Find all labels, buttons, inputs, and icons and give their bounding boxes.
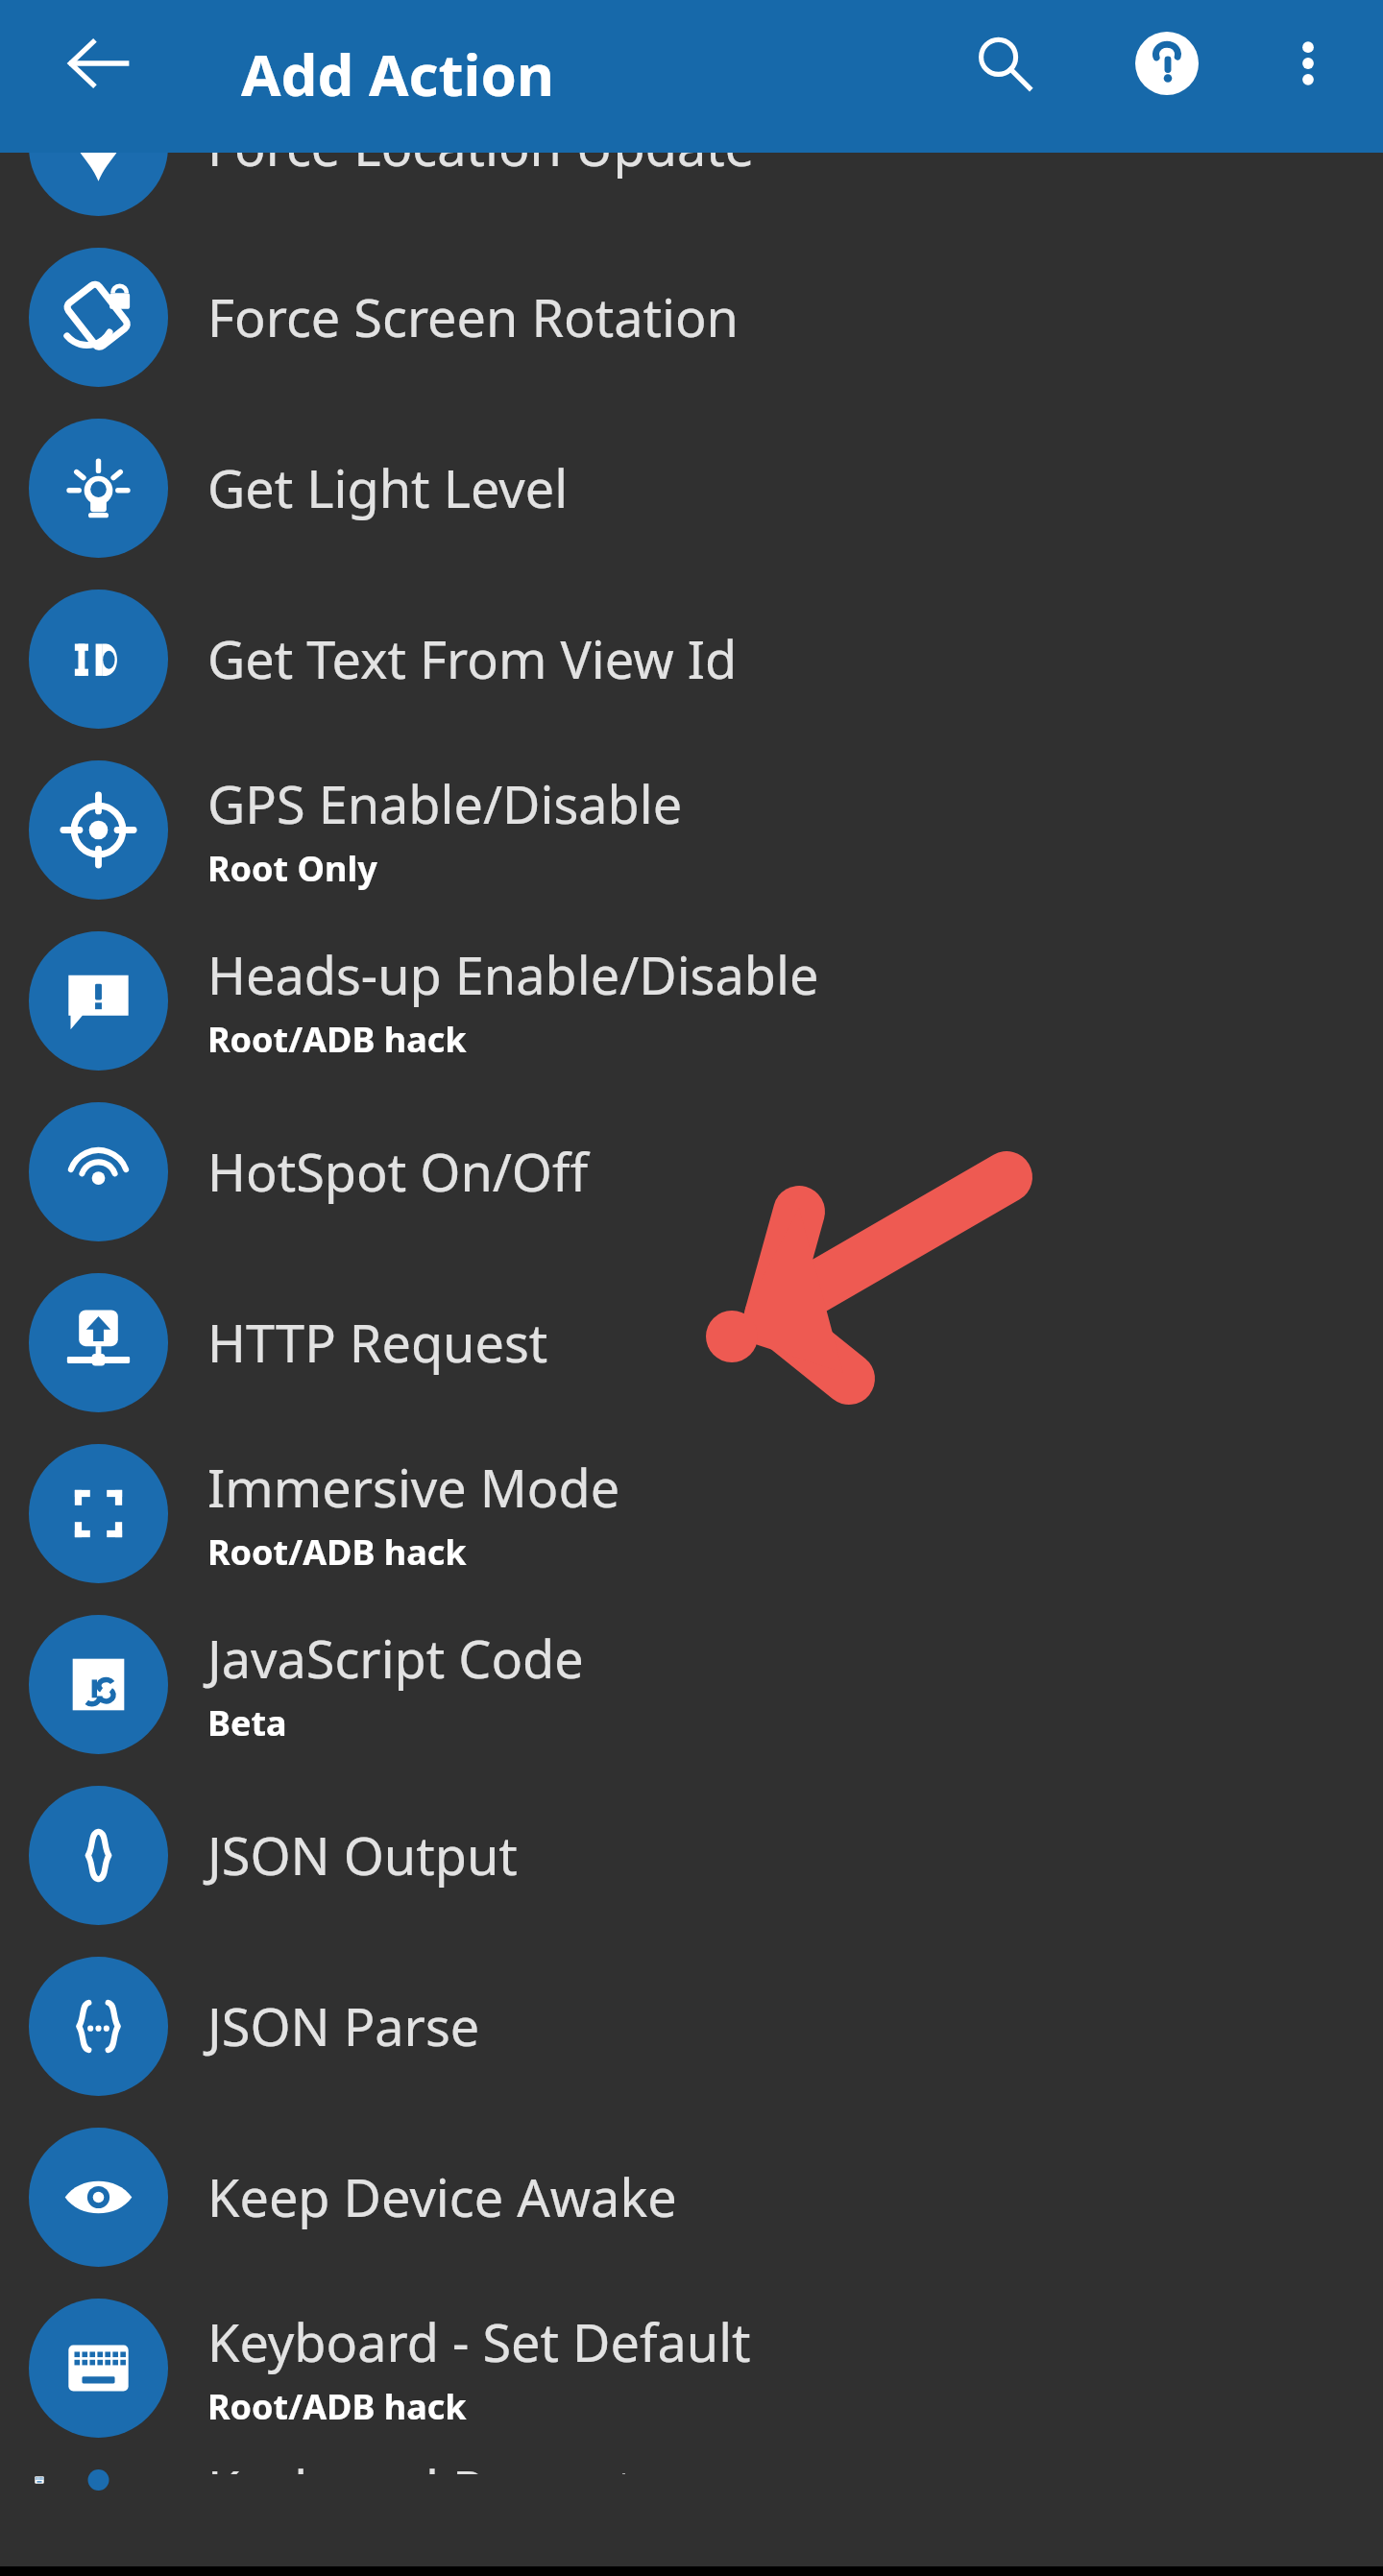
staticText: GPS Enable/Disable (207, 768, 683, 839)
staticText: JSON Parse (207, 1990, 480, 2061)
button[interactable]: Get Text From View Id (0, 573, 1383, 744)
button[interactable]: Help (1123, 19, 1211, 108)
staticText: Beta (207, 1699, 287, 1746)
button[interactable]: HTTP Request (0, 1257, 1383, 1428)
button[interactable]: Heads-up Enable/Disable (0, 915, 1383, 1086)
button[interactable]: Get Light Level (0, 402, 1383, 573)
button[interactable]: Force Screen Rotation (0, 231, 1383, 402)
staticText: JSON Output (207, 1819, 518, 1890)
button[interactable]: Force Location Update (0, 153, 1383, 231)
staticText: Keep Device Awake (207, 2161, 677, 2232)
staticText: Root/ADB hack (207, 1529, 467, 1576)
staticText: Heads-up Enable/Disable (207, 939, 819, 1010)
staticText: JavaScript Code (207, 1623, 584, 1694)
staticText: Root/ADB hack (207, 2383, 467, 2430)
button[interactable]: Keep Device Awake (0, 2111, 1383, 2282)
button[interactable]: More options (1264, 19, 1352, 108)
staticText: HTTP Request (207, 1307, 548, 1378)
staticText: Keyboard Prompt (207, 2453, 635, 2474)
staticText: Immersive Mode (207, 1452, 620, 1523)
button[interactable]: JavaScript Code (0, 1599, 1383, 1769)
button[interactable]: Search (959, 19, 1048, 108)
staticText: Keyboard - Set Default (207, 2306, 751, 2377)
staticText: Get Text From View Id (207, 623, 738, 694)
staticText: Force Location Update (207, 153, 755, 181)
button[interactable]: JSON Output (0, 1769, 1383, 1940)
button[interactable]: JSON Parse (0, 1940, 1383, 2111)
staticText: Root/ADB hack (207, 1016, 467, 1063)
button[interactable]: Navigate up (54, 19, 142, 108)
button[interactable]: HotSpot On/Off (0, 1086, 1383, 1257)
staticText: Get Light Level (207, 452, 569, 523)
button[interactable]: GPS Enable/Disable (0, 744, 1383, 915)
staticText: Force Screen Rotation (207, 281, 739, 352)
staticText: Add Action (241, 35, 554, 113)
button[interactable]: Keyboard Prompt (0, 2453, 1383, 2474)
button[interactable]: Keyboard - Set Default (0, 2282, 1383, 2453)
staticText: Root Only (207, 845, 377, 892)
staticText: HotSpot On/Off (207, 1136, 589, 1207)
button[interactable]: Immersive Mode (0, 1428, 1383, 1599)
